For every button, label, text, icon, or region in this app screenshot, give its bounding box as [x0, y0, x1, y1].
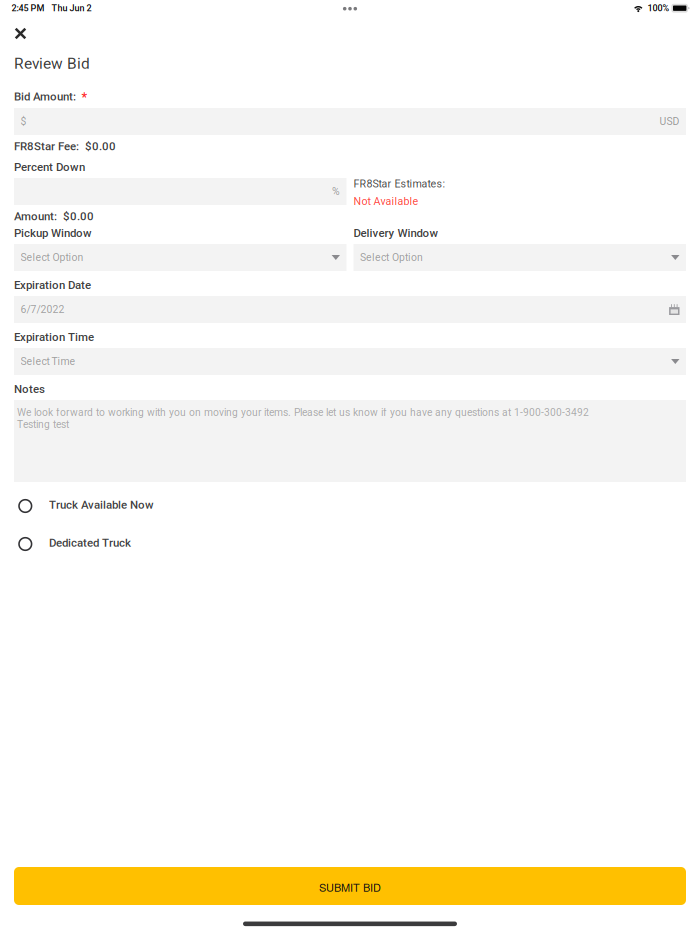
button[interactable]: Select Time [14, 348, 686, 375]
staticText: $ [20, 115, 26, 128]
button[interactable]: Dedicated Truck [14, 530, 686, 558]
button[interactable]: SUBMIT BID [14, 867, 686, 905]
button[interactable]: Truck Available Now [14, 492, 686, 520]
staticText: Delivery Window [353, 226, 438, 240]
staticText: FR8Star Fee: $0.00 [14, 139, 116, 153]
staticText: Percent Down [14, 160, 85, 174]
staticText: Expiration Date [14, 278, 91, 292]
staticText: * [81, 89, 87, 104]
staticText: Truck Available Now [49, 498, 154, 511]
staticText: Notes [14, 382, 45, 396]
staticText: Testing test [17, 418, 69, 430]
staticText: Review Bid [14, 54, 90, 73]
staticText: Select Option [360, 251, 423, 264]
staticText: Select Option [20, 251, 83, 264]
staticText: Dedicated Truck [49, 536, 131, 549]
button[interactable]: Select Option [353, 244, 686, 271]
staticText: USD [659, 115, 679, 128]
button[interactable]: Bid Amount [14, 108, 686, 135]
staticText: FR8Star Estimates: [353, 177, 445, 190]
staticText: SUBMIT BID [319, 879, 381, 895]
staticText: Pickup Window [14, 226, 92, 240]
staticText: 6/7/2022 [20, 303, 64, 316]
staticText: Bid Amount: [14, 90, 76, 103]
button[interactable]: We look forward to working with you on m… [14, 400, 686, 482]
staticText: 100% [647, 3, 669, 13]
staticText: We look forward to working with you on m… [17, 406, 589, 418]
staticText: Expiration Time [14, 330, 94, 344]
staticText: Not Available [353, 195, 418, 207]
staticText: Amount: $0.00 [14, 209, 94, 223]
staticText: Thu Jun 2 [51, 3, 91, 13]
button[interactable]: Select Option [14, 244, 346, 271]
button[interactable]: Close [5, 19, 35, 47]
staticText: % [332, 185, 340, 198]
staticText: 2:45 PM [11, 3, 44, 13]
staticText: Select Time [20, 355, 75, 368]
button[interactable]: 6/7/2022 [14, 296, 686, 323]
